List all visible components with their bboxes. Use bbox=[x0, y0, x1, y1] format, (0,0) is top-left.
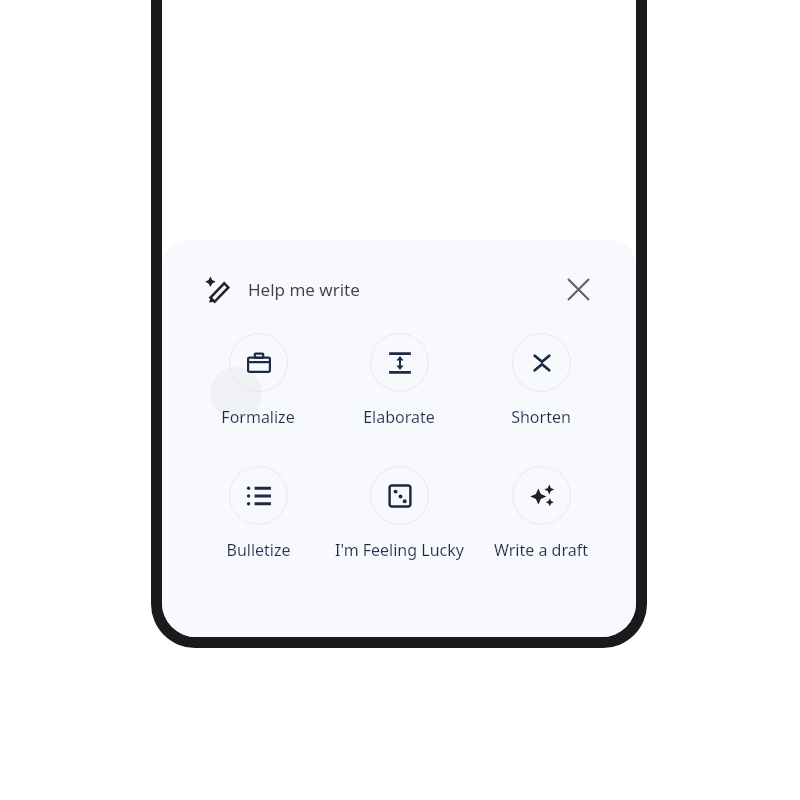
staticText: Help me write bbox=[248, 278, 360, 301]
button[interactable]: I'm Feeling Lucky bbox=[335, 466, 464, 561]
staticText: Write a draft bbox=[494, 539, 588, 561]
staticText: I'm Feeling Lucky bbox=[335, 539, 464, 561]
staticText: Elaborate bbox=[363, 406, 435, 428]
button[interactable]: Elaborate bbox=[363, 333, 435, 428]
button[interactable]: Bulletize bbox=[226, 466, 291, 561]
staticText: Bulletize bbox=[226, 539, 291, 561]
button[interactable]: Write a draft bbox=[494, 466, 588, 561]
button[interactable]: Formalize bbox=[221, 333, 295, 428]
staticText: Shorten bbox=[511, 406, 571, 428]
staticText: Formalize bbox=[221, 406, 295, 428]
button[interactable]: Shorten bbox=[511, 333, 571, 428]
button[interactable]: Close bbox=[560, 271, 596, 307]
